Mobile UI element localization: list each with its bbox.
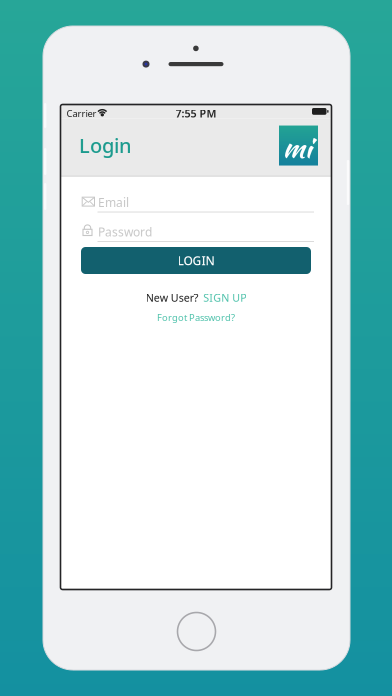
- staticText: Login: [79, 132, 132, 159]
- staticText: Password: [98, 224, 152, 240]
- button[interactable]: SIGN UP: [203, 290, 246, 305]
- button[interactable]: Forgot Password?: [81, 311, 311, 324]
- staticText: Email: [98, 194, 129, 210]
- staticText: New User?: [146, 290, 199, 305]
- staticText: LOGIN: [177, 252, 214, 268]
- staticText: Forgot Password?: [157, 311, 235, 324]
- staticText: 7:55 PM: [175, 106, 216, 120]
- staticText: Carrier: [66, 107, 96, 119]
- staticText: mi: [282, 126, 311, 168]
- staticText: SIGN UP: [203, 290, 246, 305]
- button[interactable]: LOGIN: [81, 247, 311, 274]
